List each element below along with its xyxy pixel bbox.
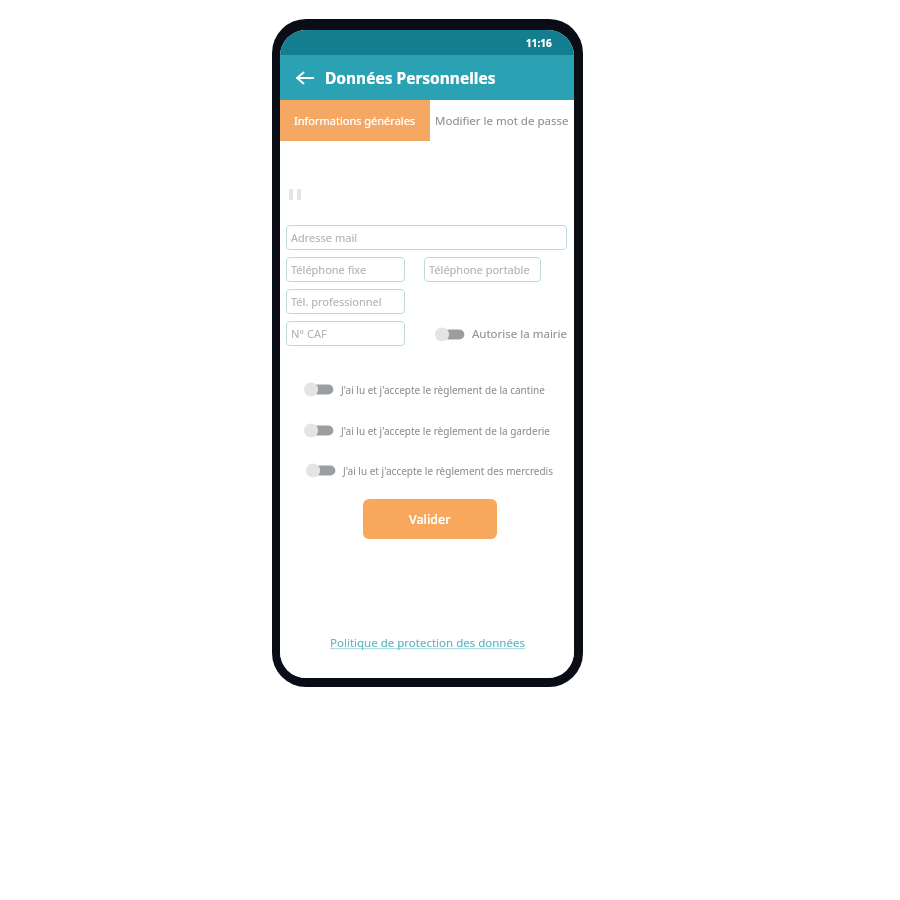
button[interactable]: Politique de protection des données xyxy=(324,632,531,654)
button[interactable]: Autorise la mairie xyxy=(435,326,568,342)
staticText: Téléphone fixe xyxy=(291,262,367,277)
button[interactable]: Modifier le mot de passe xyxy=(430,100,574,141)
button[interactable]: J'ai lu et j'accepte le règlement de la … xyxy=(304,382,545,397)
staticText: Adresse mail xyxy=(291,230,358,245)
staticText: Autorise la mairie xyxy=(472,326,568,342)
button[interactable]: Tél. professionnel xyxy=(286,289,405,314)
staticText: 11:16 xyxy=(526,36,552,50)
staticText: Politique de protection des données xyxy=(330,635,525,651)
staticText: J'ai lu et j'accepte le règlement des me… xyxy=(343,464,553,478)
button[interactable]: Valider xyxy=(363,499,497,539)
staticText: Informations générales xyxy=(294,113,416,128)
button[interactable]: J'ai lu et j'accepte le règlement de la … xyxy=(304,423,551,438)
staticText: J'ai lu et j'accepte le règlement de la … xyxy=(341,424,551,438)
staticText: Données Personnelles xyxy=(325,67,496,88)
button[interactable]: Adresse mail xyxy=(286,225,567,250)
button[interactable]: Téléphone fixe xyxy=(286,257,405,282)
staticText: J'ai lu et j'accepte le règlement de la … xyxy=(341,383,545,397)
staticText: Modifier le mot de passe xyxy=(435,113,569,129)
button[interactable]: J'ai lu et j'accepte le règlement des me… xyxy=(306,463,553,478)
button[interactable]: Informations générales xyxy=(280,100,430,141)
staticText: Valider xyxy=(409,511,451,528)
button[interactable]: N° CAF xyxy=(286,321,405,346)
staticText: N° CAF xyxy=(291,326,327,341)
staticText: Téléphone portable xyxy=(429,262,530,277)
button[interactable]: Téléphone portable xyxy=(424,257,541,282)
staticText: Tél. professionnel xyxy=(291,294,382,309)
button[interactable]: Back xyxy=(288,61,322,95)
